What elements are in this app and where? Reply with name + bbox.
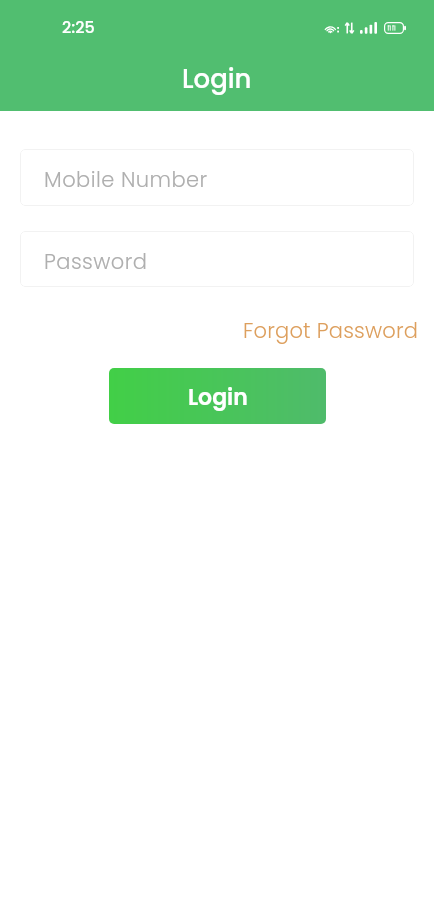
other: Wi-Fi [325,22,339,34]
button[interactable]: Mobile Number [20,149,414,206]
button[interactable]: Password [20,231,414,287]
staticText: Password [44,247,148,276]
staticText: Login [182,61,252,97]
staticText: 2:25 [62,16,95,38]
button[interactable]: Forgot Password [225,312,434,349]
staticText: Login [188,382,248,413]
staticText: Mobile Number [44,165,208,194]
other: Mobile data [345,22,354,34]
other: Signal strength [360,22,377,34]
button[interactable]: Login [109,368,326,424]
other: Battery [384,22,406,34]
